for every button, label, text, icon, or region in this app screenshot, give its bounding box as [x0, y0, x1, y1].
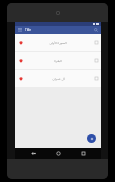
button[interactable]: Recent apps — [76, 148, 90, 159]
button[interactable]: آل عمران — [15, 70, 101, 87]
button[interactable]: السورة الأولى — [15, 34, 101, 51]
button[interactable]: Back — [26, 148, 40, 159]
button[interactable]: Open navigation drawer — [17, 27, 23, 33]
button[interactable]: Add — [87, 134, 96, 143]
staticText: Title — [25, 28, 31, 32]
button[interactable]: Search — [93, 27, 99, 33]
button[interactable]: البقرة — [15, 52, 101, 69]
staticText: البقرة — [54, 59, 62, 62]
staticText: السورة الأولى — [49, 41, 67, 45]
button[interactable]: Home — [51, 148, 65, 159]
staticText: آل عمران — [52, 77, 65, 81]
